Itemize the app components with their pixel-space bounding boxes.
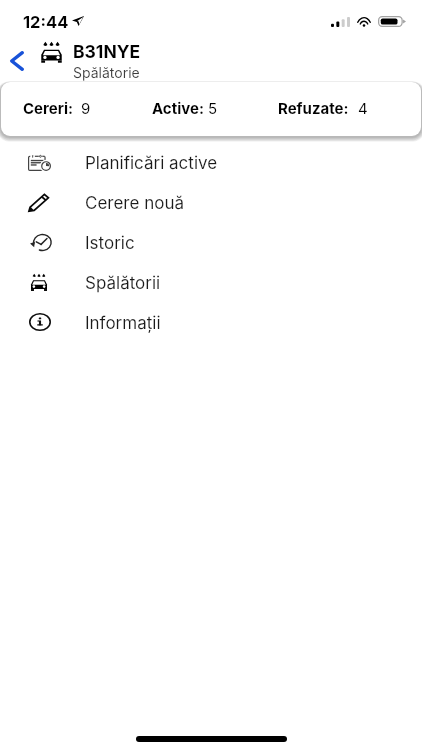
staticText: 4 <box>358 99 368 117</box>
staticText: Active: <box>152 99 204 117</box>
button[interactable]: Back <box>0 44 34 78</box>
staticText: 12:44 <box>23 12 69 32</box>
staticText: Cerere nouă <box>85 193 185 214</box>
button[interactable]: Spălătorii <box>0 262 422 302</box>
button[interactable]: Planificări active <box>0 142 422 182</box>
staticText: B31NYE <box>73 41 141 62</box>
staticText: Istoric <box>85 233 135 254</box>
staticText: Planificări active <box>85 153 218 174</box>
staticText: Cereri: <box>23 99 74 117</box>
staticText: 5 <box>208 99 218 117</box>
button[interactable]: Cerere nouă <box>0 182 422 222</box>
staticText: Spălătorie <box>73 64 140 81</box>
button[interactable]: Informații <box>0 302 422 342</box>
staticText: Spălătorii <box>85 273 161 294</box>
staticText: 9 <box>81 99 91 117</box>
staticText: Informații <box>85 313 161 334</box>
button[interactable]: Istoric <box>0 222 422 262</box>
staticText: Refuzate: <box>278 99 349 117</box>
